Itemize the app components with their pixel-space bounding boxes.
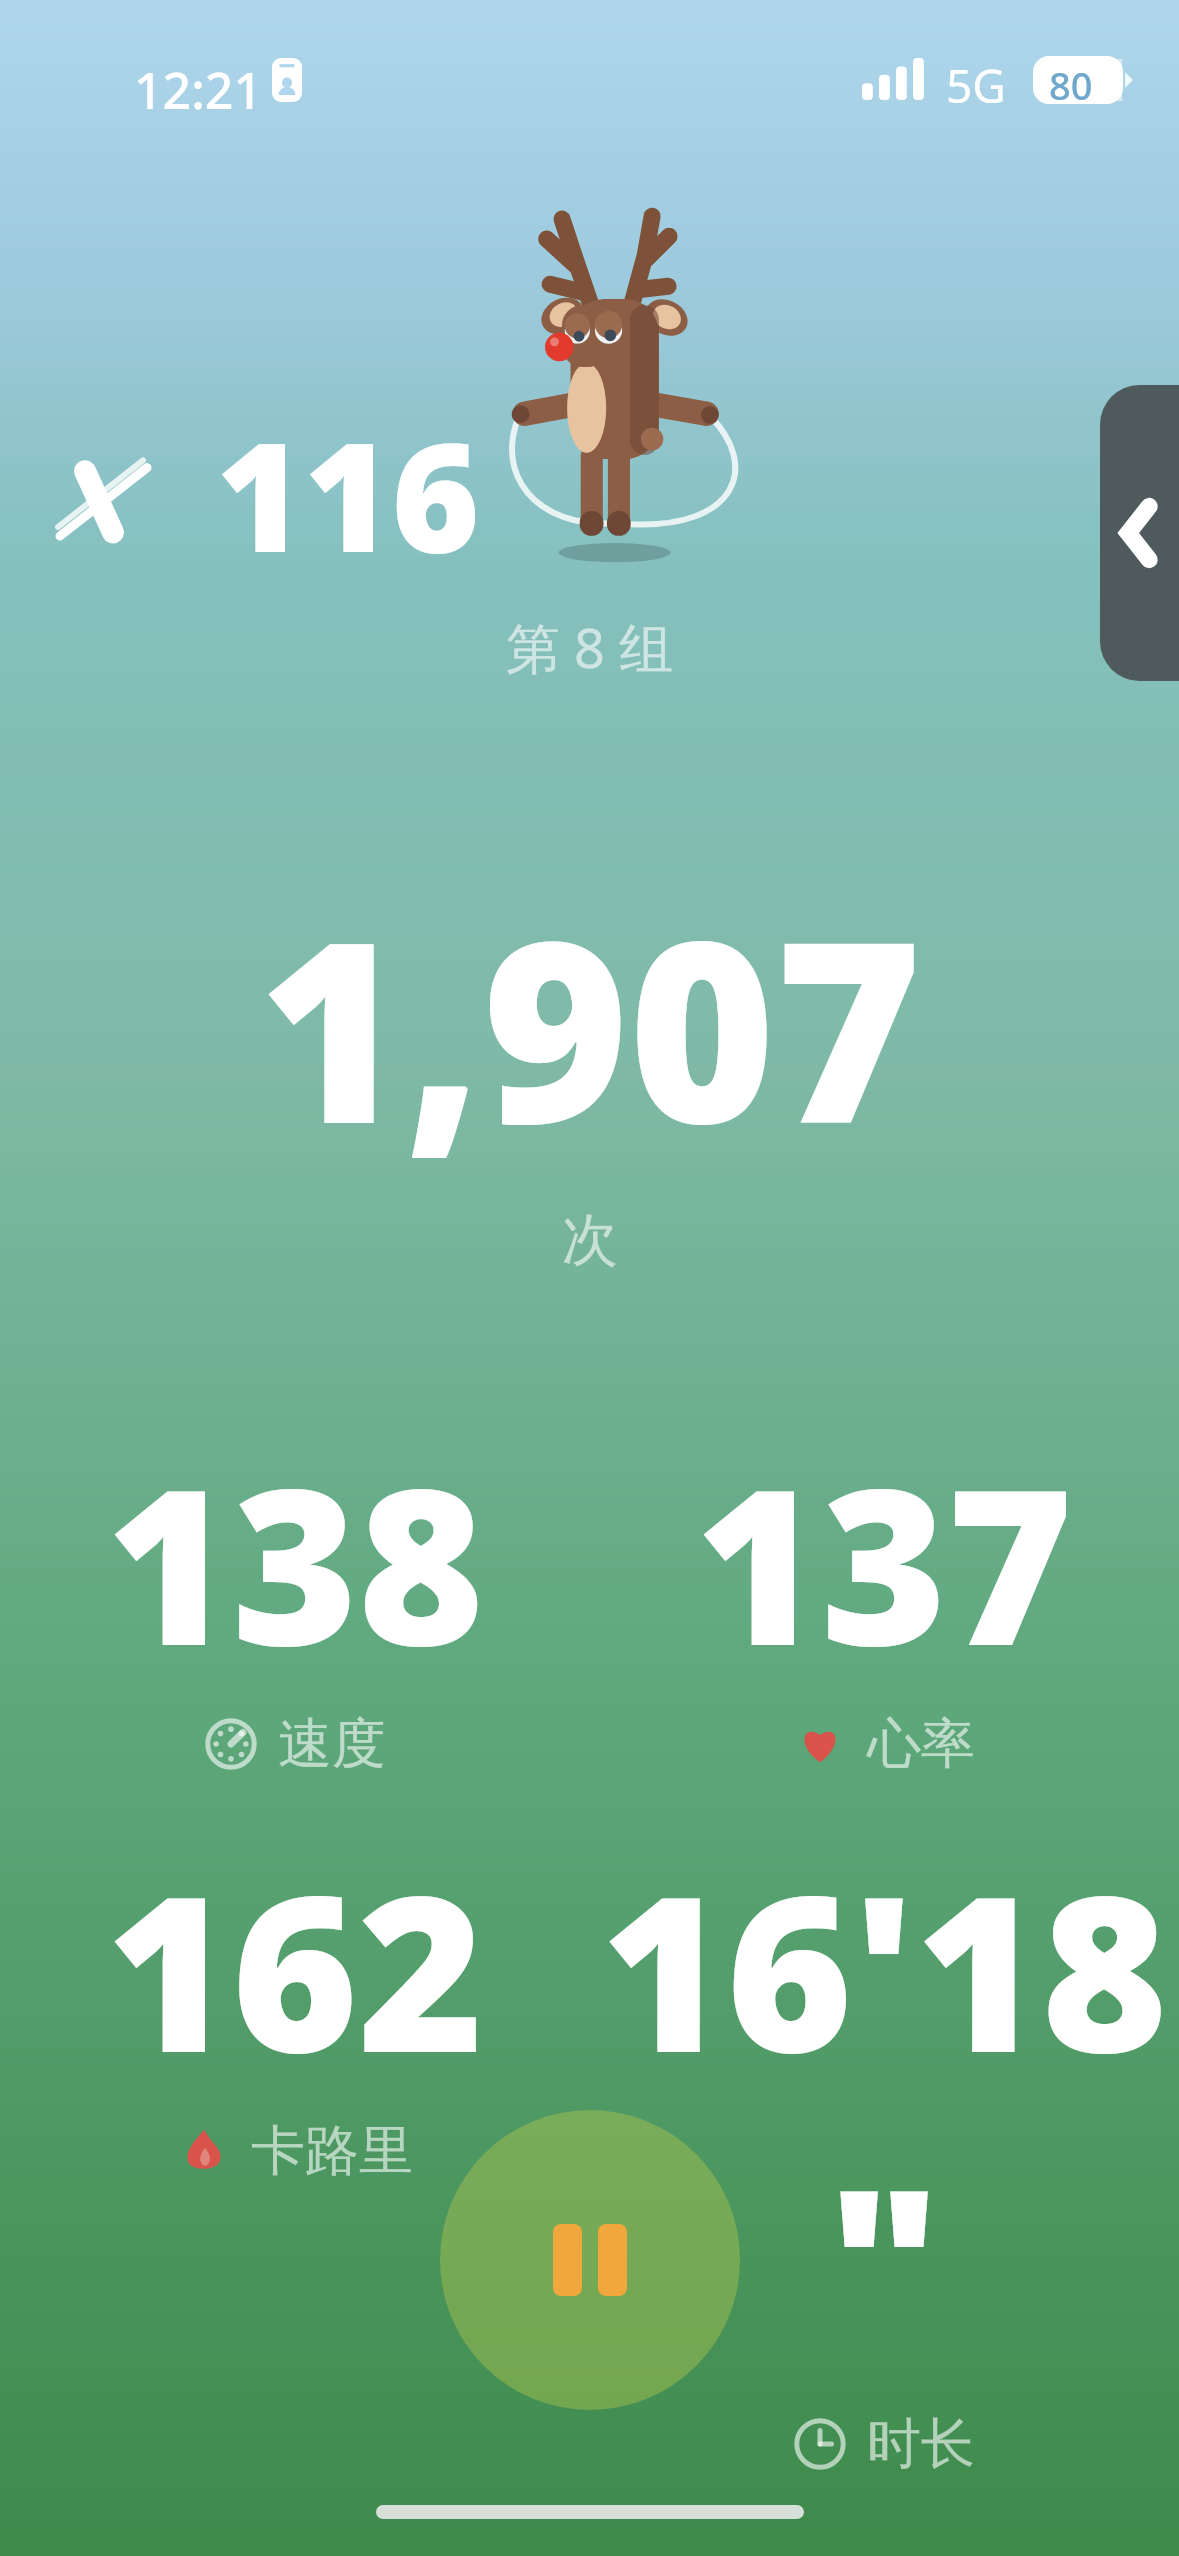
staticText: 第 8 组 bbox=[0, 610, 1179, 684]
button[interactable]: 138 bbox=[0, 1415, 589, 1778]
staticText: 5G bbox=[946, 54, 1006, 117]
staticText: 速度 bbox=[278, 1710, 386, 1778]
staticText: 116 bbox=[216, 392, 480, 596]
staticText: 次 bbox=[562, 1205, 618, 1276]
staticText: 162 bbox=[106, 1822, 484, 2115]
staticText: 16'18" bbox=[589, 1822, 1179, 2408]
button[interactable]: 16'18" bbox=[589, 1822, 1179, 2478]
staticText: 137 bbox=[695, 1415, 1073, 1708]
staticText: 1,907 bbox=[258, 856, 922, 1197]
staticText: 时长 bbox=[867, 2410, 975, 2478]
button[interactable]: 137 bbox=[589, 1415, 1179, 1778]
button[interactable]: 162 bbox=[0, 1822, 589, 2185]
button[interactable]: Expand panel bbox=[1100, 385, 1179, 681]
staticText: 12:21 bbox=[134, 56, 262, 124]
button[interactable]: Pause bbox=[440, 2110, 740, 2410]
staticText: 心率 bbox=[867, 1710, 975, 1778]
staticText: 138 bbox=[106, 1415, 484, 1708]
staticText: 80 bbox=[1049, 59, 1093, 111]
staticText: 卡路里 bbox=[251, 2117, 413, 2185]
